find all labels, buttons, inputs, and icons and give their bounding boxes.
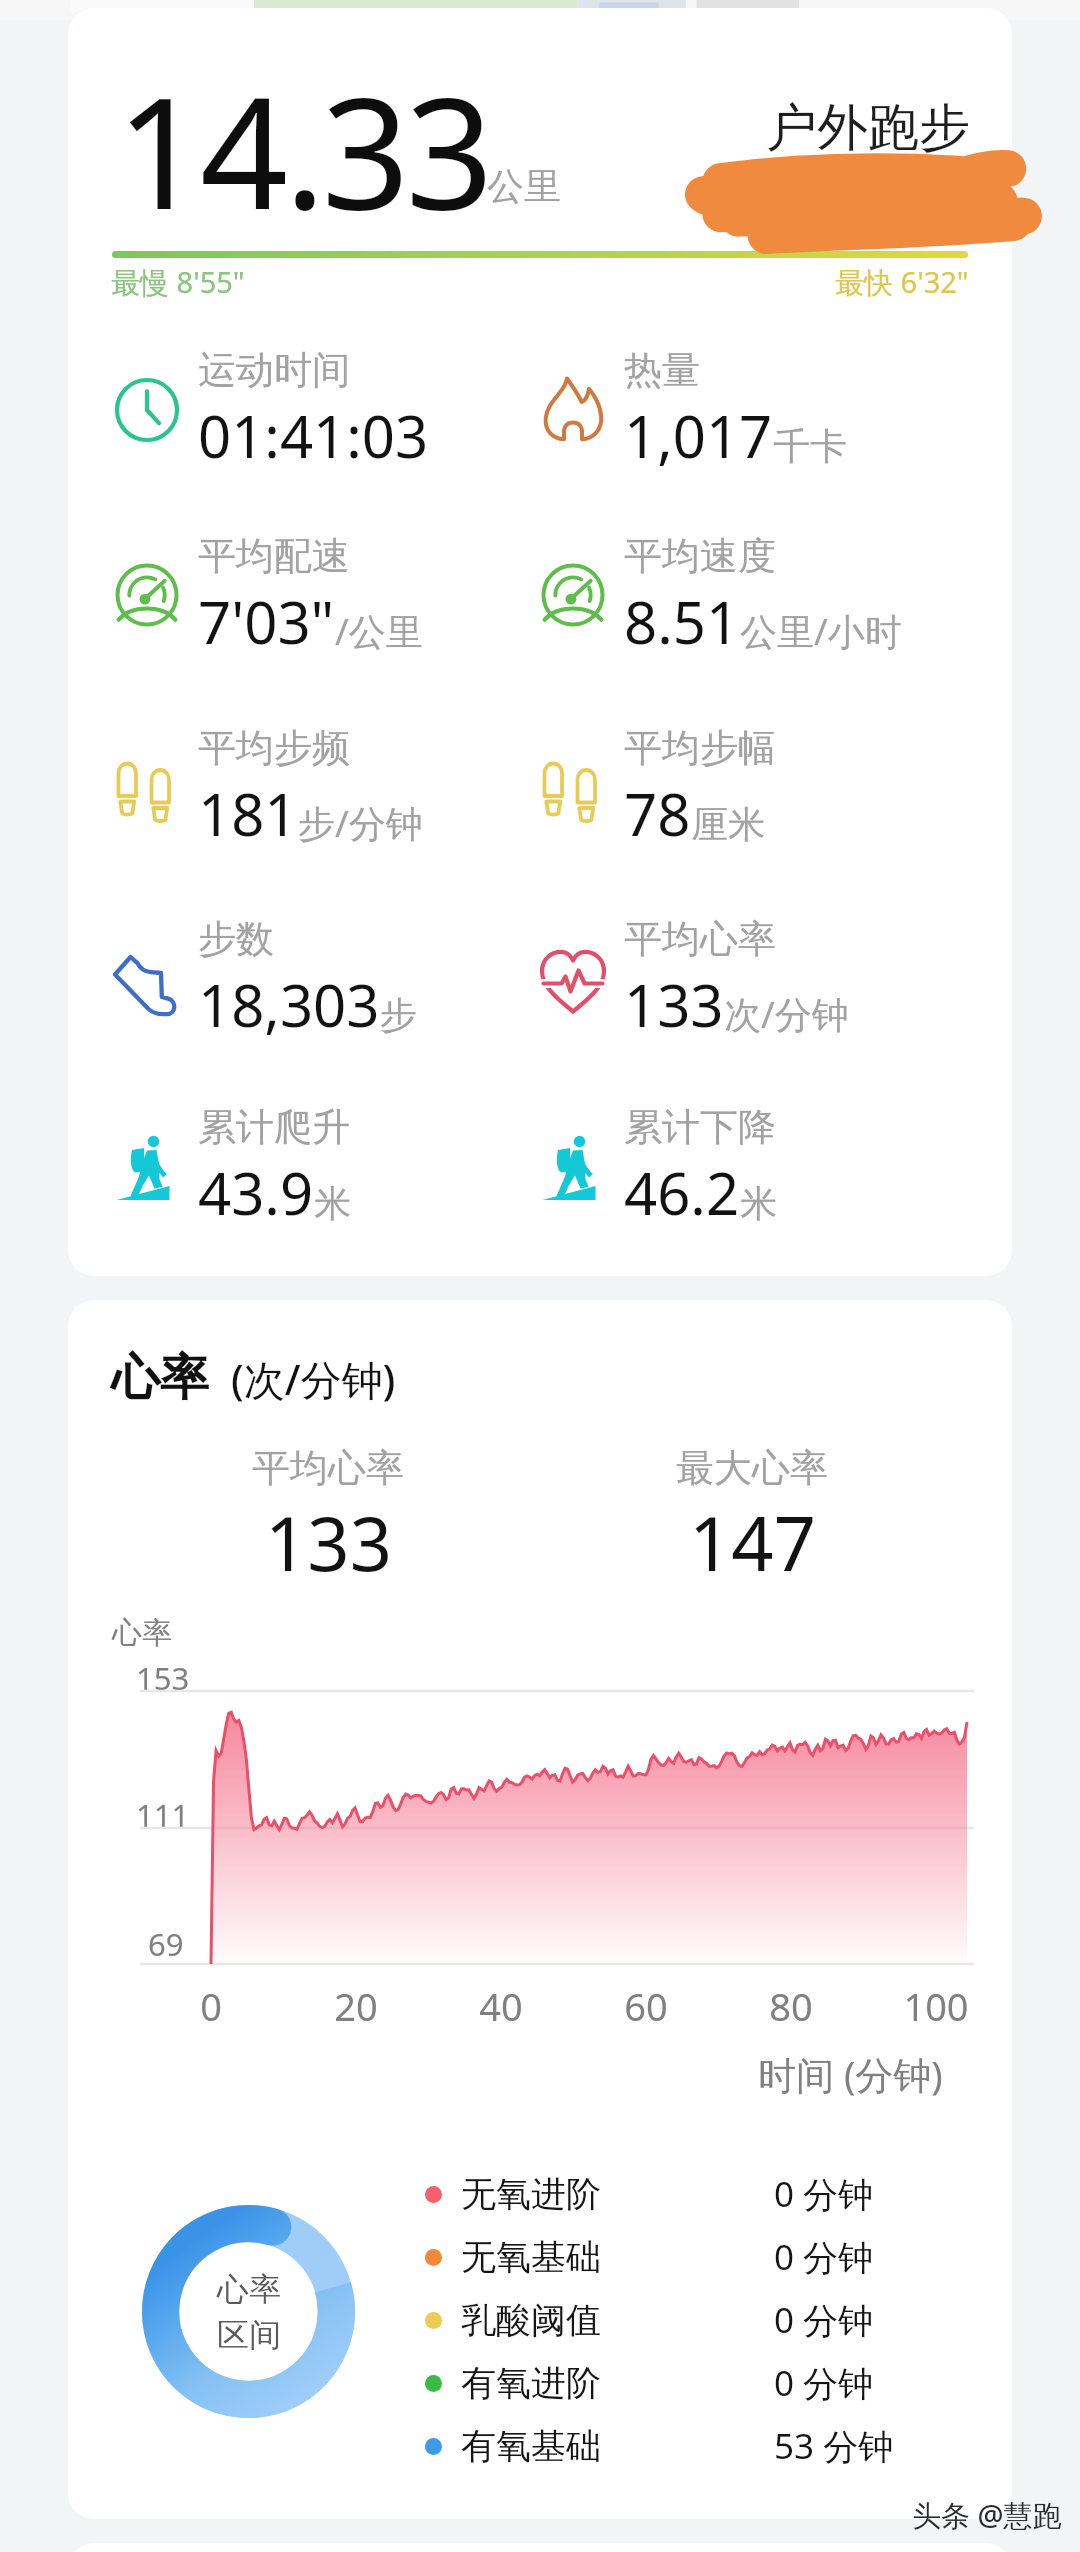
staticText: 100 [896, 1980, 976, 2032]
staticText: 累计爬升 [198, 1103, 350, 1151]
staticText: 平均步频 [198, 724, 350, 772]
button[interactable]: 热量 [523, 340, 963, 480]
staticText: 40 [461, 1980, 541, 2032]
button[interactable]: 步数 [97, 909, 537, 1049]
staticText: 最大心率 [676, 1444, 828, 1492]
staticText: 有氧基础 [461, 2424, 601, 2468]
button[interactable]: 累计爬升 [97, 1097, 537, 1237]
staticText: 111 [136, 1794, 190, 1836]
staticText: 平均心率 [624, 915, 776, 963]
staticText: 133 [265, 1492, 392, 1593]
button[interactable]: 平均配速 [97, 526, 537, 666]
staticText: 无氧基础 [461, 2235, 601, 2279]
button[interactable]: 无氧进阶 [425, 2164, 945, 2224]
staticText: 18,303 [198, 965, 380, 1044]
staticText: 千卡 [773, 423, 847, 470]
staticText: 0 分钟 [774, 2359, 874, 2407]
staticText: 心率 [111, 1347, 209, 1409]
staticText: 181 [198, 774, 298, 853]
staticText: (次/分钟) [231, 1351, 396, 1407]
staticText: 0 分钟 [774, 2296, 874, 2344]
staticText: 7'03" [198, 582, 335, 661]
staticText: 区间 [217, 2315, 281, 2355]
staticText: 热量 [624, 346, 700, 394]
button[interactable]: 平均心率 [523, 909, 963, 1049]
button[interactable]: 有氧基础 [425, 2416, 945, 2476]
staticText: 厘米 [691, 801, 765, 848]
staticText: 133 [624, 965, 724, 1044]
button[interactable]: 有氧进阶 [425, 2353, 945, 2413]
staticText: 平均心率 [252, 1444, 404, 1492]
staticText: /公里 [335, 605, 423, 656]
button[interactable]: 乳酸阈值 [425, 2290, 945, 2350]
staticText: 公里/小时 [740, 605, 902, 656]
staticText: 步/分钟 [298, 797, 423, 848]
staticText: 43.9 [198, 1153, 314, 1232]
staticText: 户外跑步 [766, 96, 970, 160]
staticText: 0 分钟 [774, 2170, 874, 2218]
staticText: 14.33 [116, 44, 490, 254]
staticText: 53 分钟 [774, 2422, 894, 2470]
staticText: 0 [171, 1980, 251, 2032]
staticText: 20 [316, 1980, 396, 2032]
staticText: 69 [148, 1923, 184, 1965]
staticText: 8.51 [624, 582, 740, 661]
staticText: 最快 6'32" [835, 262, 969, 302]
staticText: 0 分钟 [774, 2233, 874, 2281]
staticText: 46.2 [624, 1153, 740, 1232]
staticText: 步数 [198, 915, 274, 963]
staticText: 头条 @慧跑 [912, 2495, 1062, 2535]
staticText: 心率 [217, 2269, 281, 2309]
staticText: 步 [380, 992, 417, 1039]
staticText: 平均配速 [198, 532, 350, 580]
staticText: 1,017 [624, 396, 773, 475]
staticText: 平均步幅 [624, 724, 776, 772]
staticText: 米 [740, 1180, 777, 1227]
staticText: 147 [689, 1492, 816, 1593]
staticText: 次/分钟 [724, 988, 849, 1039]
staticText: 心率 [112, 1614, 172, 1652]
staticText: 公里 [487, 163, 561, 210]
button[interactable]: 平均步幅 [523, 718, 963, 858]
staticText: 运动时间 [198, 346, 350, 394]
staticText: 01:41:03 [198, 396, 429, 475]
staticText: 累计下降 [624, 1103, 776, 1151]
staticText: 米 [314, 1180, 351, 1227]
staticText: 153 [136, 1657, 190, 1699]
staticText: 无氧进阶 [461, 2172, 601, 2216]
staticText: 乳酸阈值 [461, 2298, 601, 2342]
button[interactable]: 平均速度 [523, 526, 963, 666]
staticText: 最慢 8'55" [111, 262, 245, 302]
staticText: 60 [606, 1980, 686, 2032]
staticText: 78 [624, 774, 691, 853]
button[interactable]: 运动时间 [97, 340, 537, 480]
staticText: 80 [751, 1980, 831, 2032]
staticText: 有氧进阶 [461, 2361, 601, 2405]
staticText: 时间 (分钟) [758, 2048, 943, 2100]
staticText: 平均速度 [624, 532, 776, 580]
button[interactable]: 无氧基础 [425, 2227, 945, 2287]
button[interactable]: 累计下降 [523, 1097, 963, 1237]
button[interactable]: 平均步频 [97, 718, 537, 858]
